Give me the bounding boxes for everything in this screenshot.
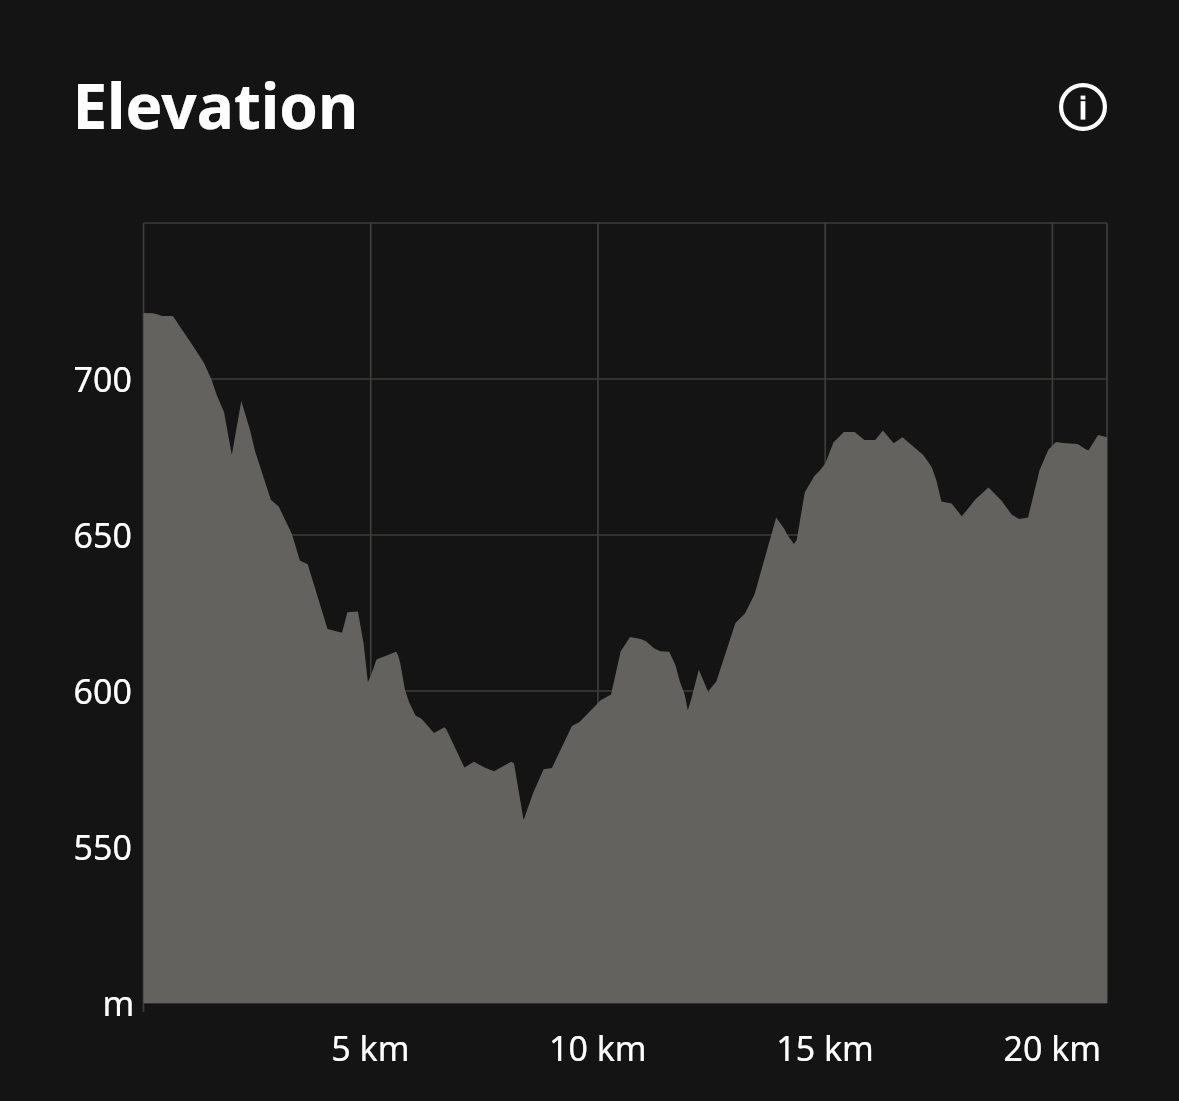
button[interactable]: About elevation bbox=[1059, 83, 1107, 131]
button[interactable]: Elevation chart bbox=[144, 223, 1108, 1003]
